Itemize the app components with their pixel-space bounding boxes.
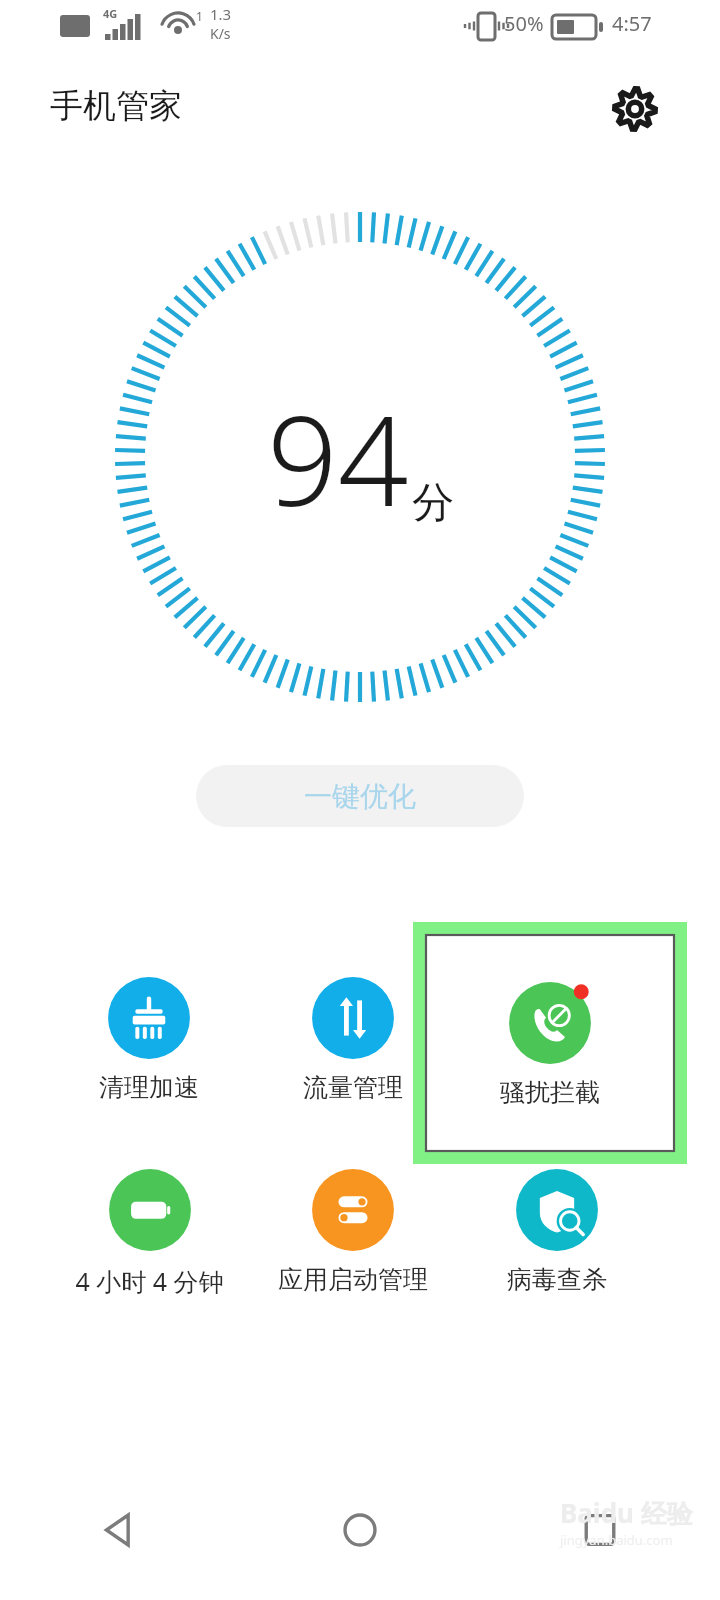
staticText: jingyan.baidu.com	[560, 1531, 673, 1549]
staticText: 4 小时 4 分钟	[75, 1264, 224, 1298]
staticText: 应用启动管理	[278, 1264, 428, 1295]
staticText: 手机管家	[50, 85, 182, 127]
button[interactable]: 应用启动管理	[253, 1166, 453, 1306]
button[interactable]: 骚扰拦截	[457, 974, 657, 1114]
staticText: K/s	[210, 24, 231, 43]
staticText: 4:57	[612, 10, 652, 37]
button[interactable]: Recent apps	[480, 1480, 720, 1580]
staticText: 清理加速	[99, 1072, 199, 1103]
staticText: 流量管理	[303, 1072, 403, 1103]
staticText: 骚扰拦截	[500, 1077, 600, 1108]
button[interactable]: Settings	[604, 78, 666, 140]
staticText: 50%	[504, 10, 544, 37]
staticText: 骚扰拦截	[507, 1072, 607, 1103]
button[interactable]: Back	[0, 1480, 240, 1580]
staticText: 一键优化	[304, 779, 416, 814]
button[interactable]: 清理加速	[49, 974, 249, 1114]
staticText: 94	[267, 373, 409, 542]
staticText: 4G	[103, 6, 118, 21]
button[interactable]: 病毒查杀	[457, 1166, 657, 1306]
staticText: 分	[412, 477, 454, 530]
staticText: 病毒查杀	[507, 1264, 607, 1295]
button[interactable]: 4 小时 4 分钟	[49, 1166, 249, 1306]
staticText: Baidu 经验	[560, 1495, 693, 1531]
button[interactable]: 流量管理	[253, 974, 453, 1114]
button[interactable]: Home	[240, 1480, 480, 1580]
staticText: 1	[196, 8, 203, 24]
button[interactable]: 一键优化	[196, 765, 524, 827]
staticText: 1.3	[210, 4, 232, 24]
